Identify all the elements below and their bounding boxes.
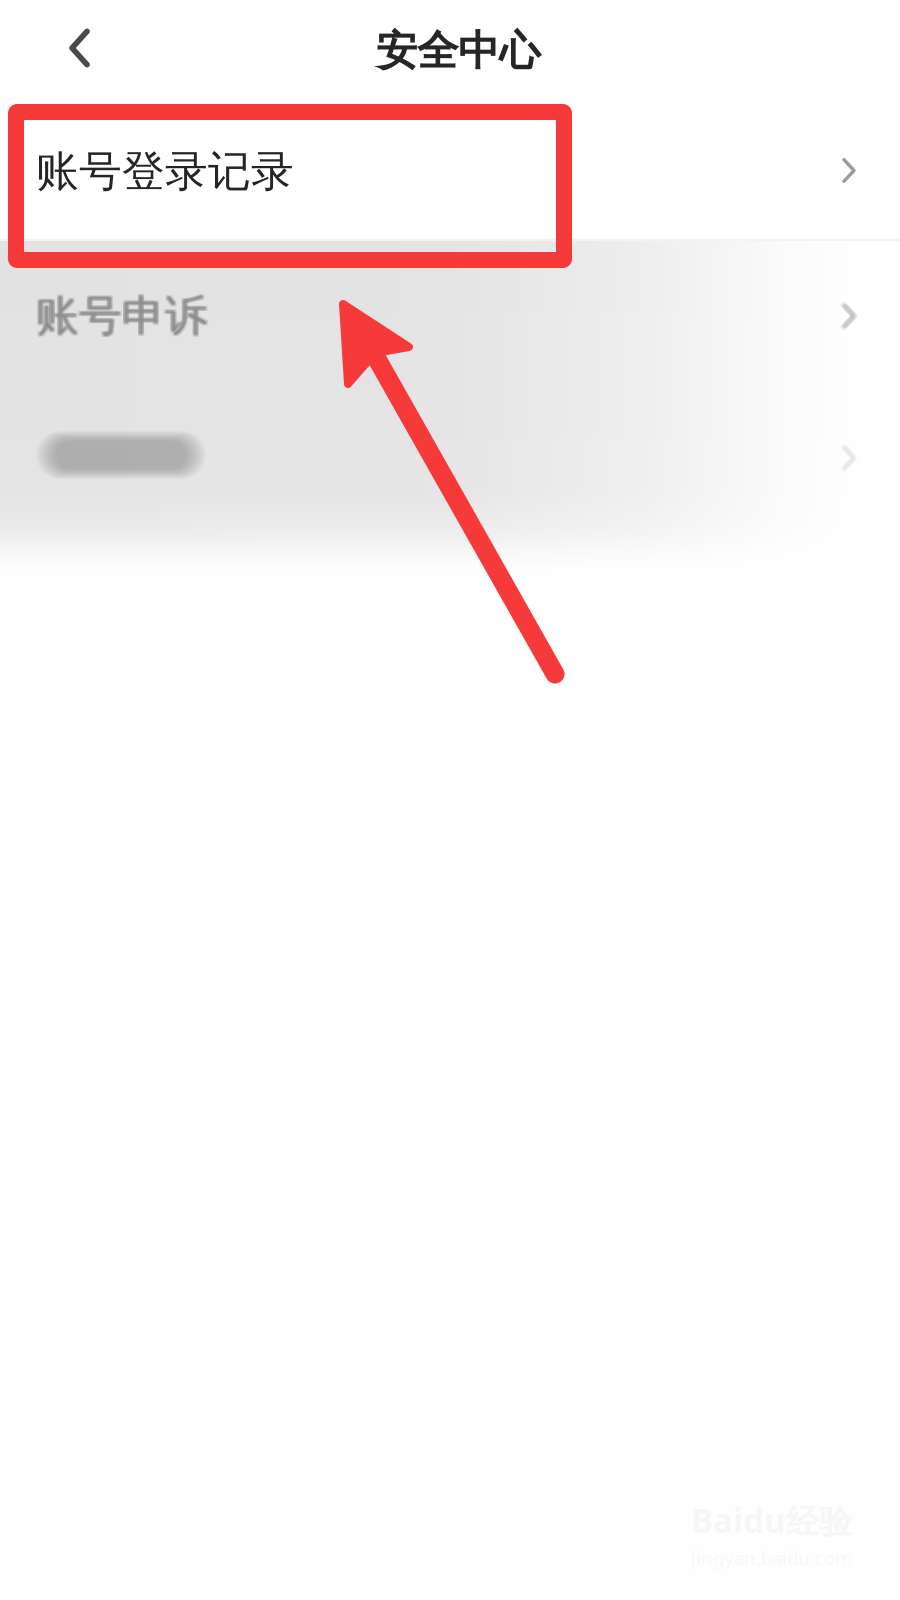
button[interactable]: Back — [0, 0, 140, 96]
button[interactable]: 账号申诉 — [0, 239, 900, 387]
staticText: Baidu经验 — [691, 1498, 852, 1542]
button[interactable]: Settings row — [0, 387, 900, 523]
staticText: 账号申诉 — [38, 291, 210, 343]
staticText: 账号申诉 — [34, 291, 206, 343]
staticText: 账号申诉 — [36, 290, 208, 342]
staticText: 安全中心 — [376, 26, 540, 76]
staticText: 账号申诉 — [34, 289, 206, 341]
staticText: 账号登录记录 — [36, 145, 294, 198]
button[interactable]: 账号登录记录 — [0, 96, 900, 239]
staticText: 账号申诉 — [38, 289, 210, 341]
